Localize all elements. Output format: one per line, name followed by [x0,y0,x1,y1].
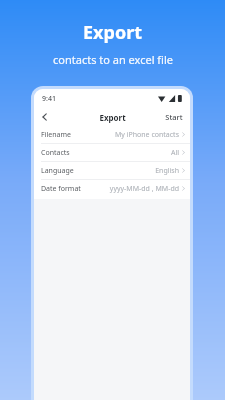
staticText: English [155,166,179,176]
staticText: 9:41 [42,94,56,104]
button[interactable]: Language [34,162,190,180]
button[interactable]: Back [34,108,54,126]
staticText: Filename [41,130,71,140]
staticText: Export [99,112,126,123]
button[interactable]: Start [165,108,183,126]
staticText: Contacts [41,148,70,158]
staticText: yyyy-MM-dd , MM-dd [109,184,179,194]
staticText: Language [41,166,74,176]
button[interactable]: Date format [34,180,190,197]
staticText: Start [165,112,183,122]
staticText: Date format [41,184,81,194]
staticText: Export [83,20,142,45]
button[interactable]: Filename [34,126,190,144]
staticText: My iPhone contacts [114,130,179,140]
button[interactable]: Contacts [34,144,190,162]
staticText: All [170,148,179,158]
staticText: contacts to an excel file [53,52,173,67]
